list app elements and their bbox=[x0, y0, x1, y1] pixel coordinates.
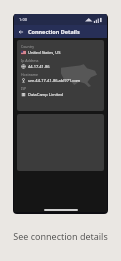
staticText: Hostname bbox=[21, 72, 39, 77]
staticText: ure.44-17-41-86.abl971.com bbox=[28, 78, 81, 83]
staticText: Connection Details bbox=[28, 28, 80, 35]
staticText: DataCamp Limited bbox=[28, 92, 63, 97]
button[interactable]: Back bbox=[14, 25, 28, 38]
staticText: United States, US bbox=[28, 50, 61, 55]
staticText: 1:00 bbox=[19, 17, 27, 22]
staticText: ISP bbox=[21, 86, 27, 91]
button[interactable]: Country bbox=[17, 40, 104, 111]
staticText: Ip Address bbox=[21, 58, 39, 63]
staticText: Country bbox=[21, 44, 35, 49]
staticText: 44.17.41.86 bbox=[28, 64, 50, 69]
staticText: See connection details bbox=[13, 230, 108, 242]
